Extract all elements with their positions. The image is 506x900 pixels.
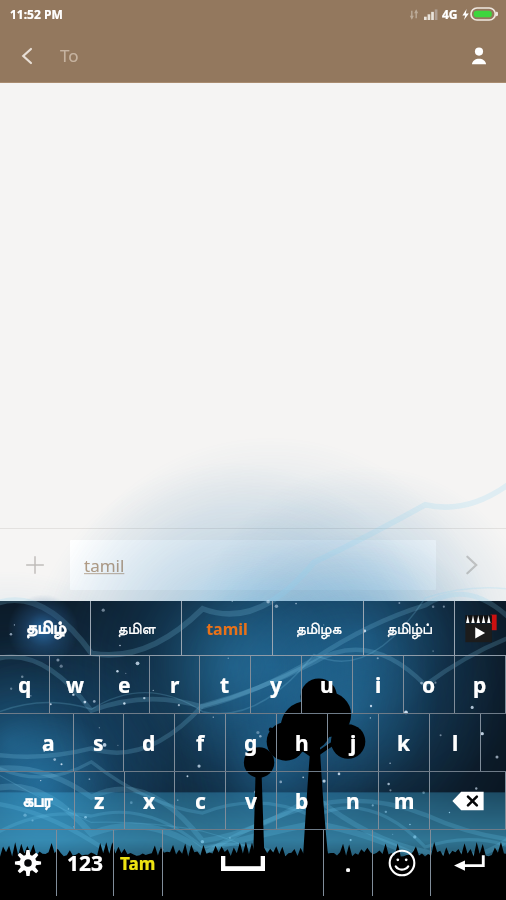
button[interactable]: v [226,772,276,830]
staticText: l [452,729,459,758]
staticText: x [143,787,156,816]
staticText: k [397,729,411,758]
button[interactable]: Enter [431,830,506,896]
staticText: u [320,671,334,700]
button[interactable]: w [50,656,99,714]
button[interactable]: h [277,714,327,772]
button[interactable]: t [200,656,250,714]
button[interactable]: z [75,772,124,830]
button[interactable]: q [0,656,49,714]
button[interactable]: தமிழ்ப் [364,601,454,656]
button[interactable]: m [379,772,429,830]
button[interactable]: Add attachment [0,529,70,601]
staticText: f [196,729,205,758]
button[interactable]: Space [163,830,323,896]
button[interactable]: தமிழக [273,601,363,656]
button[interactable]: Contacts [452,28,506,83]
staticText: தமிழ்ப் [386,621,432,637]
staticText: b [295,787,309,816]
staticText: t [220,671,230,700]
staticText: e [118,671,131,700]
button[interactable]: j [328,714,378,772]
button[interactable]: o [404,656,454,714]
staticText: . [345,848,352,878]
button[interactable]: r [150,656,199,714]
staticText: q [18,671,32,700]
staticText: y [270,671,282,700]
button[interactable]: Numbers [57,830,113,896]
button[interactable]: Tamil letters [0,772,74,830]
button[interactable]: Backspace [430,772,505,830]
staticText: tamil [84,554,125,577]
button[interactable]: b [277,772,327,830]
staticText: கபர [22,793,53,810]
staticText: s [93,729,104,758]
button[interactable]: g [226,714,276,772]
button[interactable]: s [74,714,123,772]
staticText: m [394,787,415,816]
button[interactable]: k [379,714,429,772]
staticText: d [142,729,156,758]
staticText: தமிழக [295,621,342,637]
button[interactable]: தமிழ் [0,601,90,656]
staticText: To [60,44,79,67]
staticText: h [295,729,309,758]
staticText: v [245,787,257,816]
button[interactable]: Back [0,28,54,83]
staticText: 4G [442,6,458,22]
button[interactable]: u [302,656,352,714]
staticText: z [94,787,105,816]
button[interactable]: c [175,772,225,830]
button[interactable]: Emoji [373,830,430,896]
button[interactable]: i [353,656,403,714]
button[interactable]: tamil [70,540,436,590]
button[interactable]: More suggestions [455,601,506,656]
staticText: Tam [120,852,156,875]
button[interactable]: Send [436,529,506,601]
button[interactable]: Period [324,830,372,896]
staticText: p [473,671,487,700]
button[interactable]: n [328,772,378,830]
button[interactable]: e [100,656,149,714]
staticText: c [195,787,206,816]
button[interactable]: f [175,714,225,772]
button[interactable]: Settings [0,830,56,896]
staticText: a [42,729,55,758]
staticText: 11:52 PM [10,6,63,22]
staticText: தமிழ் [25,620,66,638]
button[interactable]: l [430,714,480,772]
staticText: தமிள [117,621,156,637]
staticText: w [66,671,84,700]
button[interactable]: x [125,772,174,830]
staticText: tamil [206,618,248,640]
staticText: r [170,671,180,700]
button[interactable]: tamil [182,601,272,656]
staticText: 123 [67,849,104,878]
button[interactable]: a [24,714,73,772]
staticText: i [375,671,382,700]
button[interactable]: தமிள [91,601,181,656]
staticText: n [346,787,360,816]
button[interactable]: y [251,656,301,714]
button[interactable]: Language Tamil [114,830,162,896]
button[interactable]: p [455,656,505,714]
staticText: g [244,729,258,758]
button[interactable]: d [124,714,174,772]
staticText: j [350,729,357,758]
staticText: o [422,671,436,700]
